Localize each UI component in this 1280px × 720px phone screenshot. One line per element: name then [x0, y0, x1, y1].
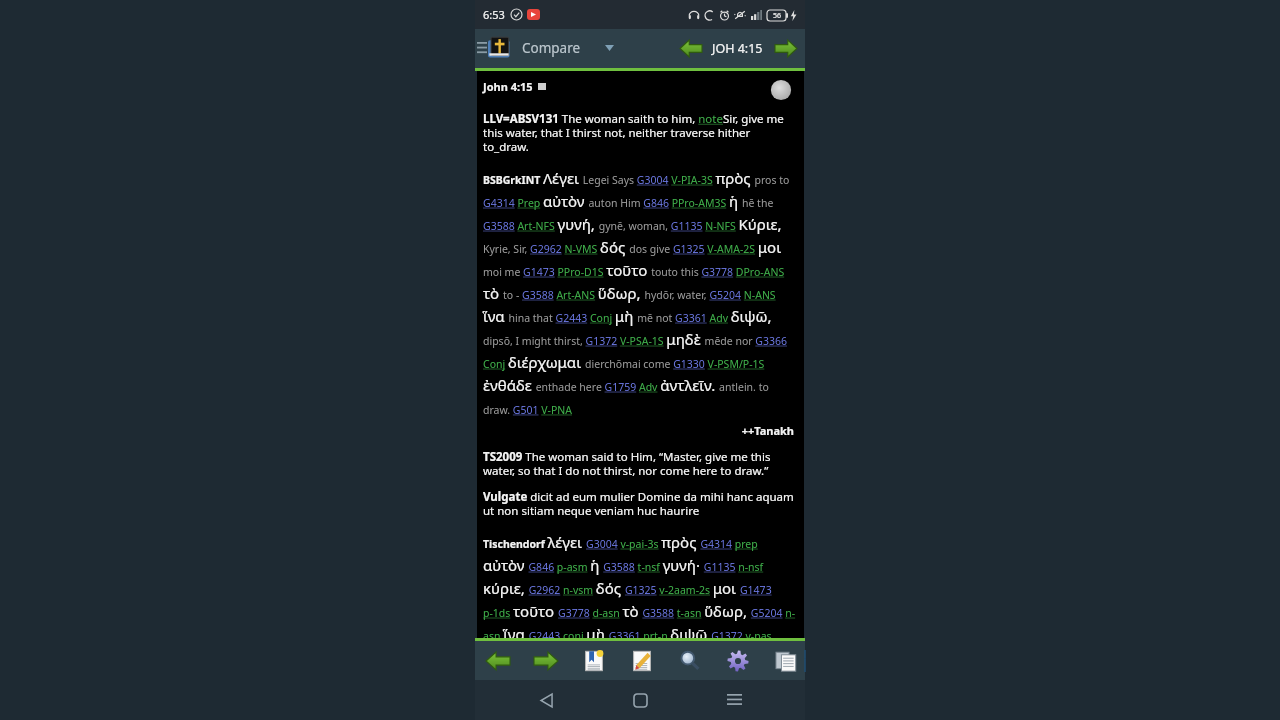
button[interactable]: Open menu [475, 29, 510, 67]
button[interactable]: Sync indicator [770, 79, 792, 101]
button[interactable]: TS2009 The woman said to Him, “Master, g… [483, 449, 798, 478]
staticText: Compare [522, 39, 581, 57]
button[interactable]: Notes [629, 648, 655, 674]
button[interactable]: Back [525, 680, 569, 720]
button[interactable]: Back [485, 648, 511, 674]
button[interactable]: ++Tanakh [483, 423, 794, 438]
button[interactable]: Recent apps [712, 680, 756, 720]
button[interactable]: Settings [725, 648, 751, 674]
staticText: 56 [773, 11, 782, 21]
button[interactable]: LLV=ABSV131 The woman saith to him, note… [483, 111, 798, 154]
button[interactable]: Copy [773, 648, 799, 674]
button[interactable]: Previous verse [674, 29, 708, 67]
button[interactable]: BSBGrkINT Λέγει Legei Says G3004 V-PIA-3… [483, 168, 798, 417]
button[interactable]: Vulgate dicit ad eum mulier Domine da mi… [483, 489, 798, 518]
button[interactable]: Home [618, 680, 662, 720]
button[interactable]: Next verse [767, 29, 805, 67]
button[interactable]: Compare [522, 29, 614, 67]
button[interactable]: Search [677, 648, 703, 674]
staticText: 6:53 [483, 7, 505, 22]
button[interactable]: Bookmarks [581, 648, 607, 674]
button[interactable]: Tischendorf λέγει G3004 v-pai-3s πρὸς G4… [483, 532, 798, 638]
staticText: John 4:15 [483, 79, 533, 94]
button[interactable]: Forward [533, 648, 559, 674]
button[interactable]: JOH 4:15 [708, 40, 767, 57]
